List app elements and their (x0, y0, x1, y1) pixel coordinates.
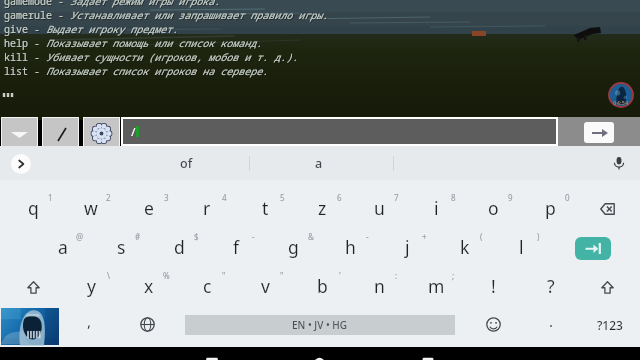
button[interactable]: i (408, 190, 465, 229)
staticText: t (262, 196, 269, 220)
button[interactable]: o (465, 190, 522, 229)
button[interactable]: l (493, 229, 550, 268)
staticText: 04:54 (613, 99, 629, 107)
button[interactable]: j (379, 229, 436, 268)
staticText: " (280, 270, 284, 281)
staticText: 9 (508, 192, 513, 203)
staticText: d (174, 235, 185, 259)
button[interactable]: Recent apps (402, 347, 454, 360)
staticText: gamemode - (5, 0, 71, 9)
staticText: @ (76, 231, 84, 242)
button[interactable]: Voice input (606, 150, 632, 176)
button[interactable]: of (151, 146, 221, 180)
button[interactable]: Send message (558, 117, 640, 146)
staticText: ! (491, 274, 496, 298)
button[interactable]: Shift (579, 268, 636, 307)
staticText: 8 (451, 192, 456, 203)
staticText: Показывает помощь или список команд. (47, 37, 263, 51)
staticText: u (374, 196, 385, 220)
staticText: ? (547, 274, 555, 298)
button[interactable]: Enter (550, 229, 636, 268)
button[interactable]: w (62, 190, 120, 229)
staticText: Устанавливает или запрашивает правило иг… (70, 8, 328, 22)
staticText: l (519, 235, 524, 259)
staticText: list - (4, 64, 46, 78)
staticText: a (315, 155, 323, 172)
button[interactable]: , (60, 307, 118, 346)
staticText: Показывает помощь или список команд. (46, 36, 262, 50)
staticText: Задает режим игры игрока. (71, 0, 221, 9)
button[interactable]: Space (185, 307, 455, 346)
staticText: ) (537, 231, 540, 242)
staticText: 4 (222, 192, 227, 203)
button[interactable]: . (522, 307, 580, 346)
button[interactable]: p (522, 190, 579, 229)
staticText: # (135, 231, 141, 242)
staticText: 2 (106, 192, 111, 203)
staticText: " (222, 270, 226, 281)
button[interactable]: v (236, 268, 294, 307)
button[interactable]: u (351, 190, 408, 229)
button[interactable]: Settings (84, 118, 119, 146)
button[interactable]: y (62, 268, 120, 307)
button[interactable]: a (34, 229, 92, 268)
button[interactable]: Shift (4, 268, 62, 307)
button[interactable]: s (92, 229, 150, 268)
staticText: , (87, 311, 92, 331)
staticText: g (288, 235, 299, 259)
button[interactable]: Emoji (464, 307, 522, 346)
button[interactable]: Backspace (579, 190, 636, 229)
button[interactable]: e (120, 190, 178, 229)
staticText: ?123 (597, 317, 623, 333)
button[interactable]: Slash command (43, 118, 78, 146)
button[interactable]: Hide chat (2, 118, 37, 146)
button[interactable]: ! (465, 268, 522, 307)
staticText: q (28, 196, 39, 220)
staticText: 7 (394, 192, 399, 203)
button[interactable]: Back (186, 347, 238, 360)
button[interactable]: x (120, 268, 178, 307)
button[interactable]: z (294, 190, 351, 229)
button[interactable]: Change language (118, 307, 176, 346)
staticText: . (549, 311, 554, 331)
staticText: help - (4, 36, 46, 50)
button[interactable]: a (284, 146, 354, 180)
button[interactable]: r (178, 190, 236, 229)
button[interactable]: Screen recorder (608, 82, 634, 108)
button[interactable]: n (351, 268, 408, 307)
button[interactable]: More suggestions (11, 154, 31, 174)
button[interactable]: m (408, 268, 465, 307)
button[interactable]: t (236, 190, 294, 229)
staticText: Выдает игроку предмет. (47, 23, 179, 37)
staticText: j (405, 235, 410, 259)
button[interactable]: c (178, 268, 236, 307)
staticText: gamerule - (5, 9, 71, 23)
staticText: of (180, 155, 193, 172)
staticText: r (203, 196, 211, 220)
button[interactable]: Stickers (0, 307, 60, 346)
button[interactable]: ?123 (580, 307, 640, 346)
button[interactable]: ? (522, 268, 579, 307)
staticText: 5 (280, 192, 285, 203)
staticText: ( (480, 231, 483, 242)
staticText: Убивает сущности (игроков, мобов и т. д.… (47, 51, 299, 65)
staticText: o (488, 196, 499, 220)
button[interactable]: q (4, 190, 62, 229)
button[interactable]: h (322, 229, 379, 268)
button[interactable]: d (150, 229, 208, 268)
staticText: n (374, 274, 385, 298)
staticText: gamerule - (4, 8, 70, 22)
staticText: - (252, 231, 255, 242)
button[interactable]: / (123, 119, 556, 144)
button[interactable]: k (436, 229, 493, 268)
button[interactable]: g (265, 229, 322, 268)
button[interactable]: f (208, 229, 265, 268)
button[interactable]: Home (293, 347, 345, 360)
staticText: v (261, 274, 270, 298)
staticText: Устанавливает или запрашивает правило иг… (71, 9, 329, 23)
staticText: Выдает игроку предмет. (46, 22, 178, 36)
staticText: give - (4, 22, 46, 36)
staticText: z (318, 196, 327, 220)
staticText: 1 (48, 192, 53, 203)
button[interactable]: b (294, 268, 351, 307)
